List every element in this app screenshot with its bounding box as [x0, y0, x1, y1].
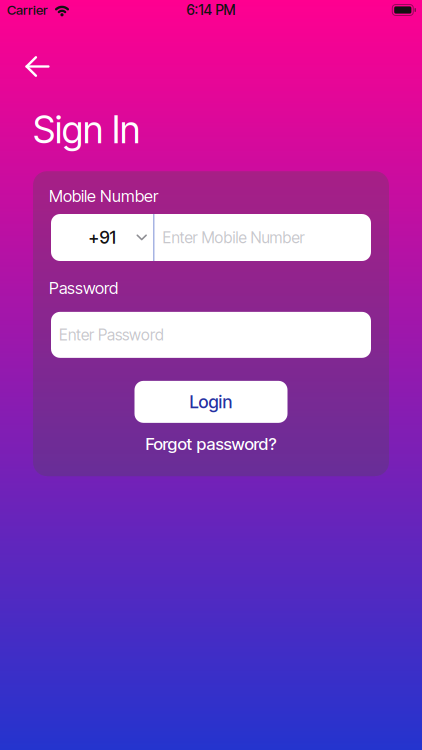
staticText: Forgot password? [145, 434, 276, 454]
staticText: Mobile Number [49, 186, 158, 206]
staticText: Carrier [7, 2, 48, 18]
staticText: Enter Mobile Number [162, 228, 304, 247]
staticText: Enter Password [59, 325, 164, 344]
button[interactable]: Select country code [51, 214, 153, 261]
button[interactable]: Login [134, 381, 287, 423]
button[interactable]: Back [0, 45, 64, 88]
staticText: Password [49, 278, 118, 298]
staticText: +91 [88, 227, 115, 248]
staticText: 6:14 PM [186, 1, 235, 18]
staticText: Login [189, 391, 232, 412]
button[interactable]: Forgot password? [131, 433, 291, 455]
staticText: Sign In [33, 107, 140, 152]
